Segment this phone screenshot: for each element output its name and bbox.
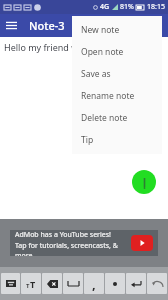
button[interactable]: Delete note <box>72 107 162 129</box>
button[interactable]: Add note <box>132 170 156 194</box>
button[interactable]: Keyboard <box>1 273 20 294</box>
button[interactable]: Period <box>105 273 125 294</box>
button[interactable]: Open note <box>72 41 162 63</box>
staticText: AdMob has a YouTube series! <box>15 230 111 240</box>
button[interactable]: Backspace <box>42 273 62 294</box>
button[interactable]: Enter <box>126 273 146 294</box>
other: YouTube <box>131 235 153 251</box>
button[interactable]: Save as <box>72 63 162 85</box>
staticText: Tip <box>81 134 94 146</box>
staticText: Note-3 <box>29 18 65 33</box>
staticText: 4G <box>100 2 110 12</box>
staticText: T <box>26 282 30 290</box>
button[interactable]: New note <box>72 19 162 41</box>
staticText: Tap for tutorials, screencasts, & more. <box>15 241 131 256</box>
staticText: , <box>92 275 96 293</box>
button[interactable]: Tip <box>72 129 162 151</box>
button[interactable]: Undo <box>147 273 167 294</box>
staticText: Rename note <box>81 90 135 102</box>
button[interactable]: AdMob has a YouTube series! <box>10 230 158 256</box>
button[interactable]: Comma <box>84 273 104 294</box>
button[interactable]: Rename note <box>72 85 162 107</box>
staticText: 81% <box>120 2 134 12</box>
button[interactable]: Text size <box>21 273 41 294</box>
staticText: Delete note <box>81 112 128 124</box>
staticText: Hello my friend what's up <box>4 41 112 53</box>
button[interactable]: Open navigation menu <box>0 14 23 37</box>
staticText: Open note <box>81 46 124 58</box>
staticText: T <box>30 278 36 290</box>
staticText: 18:15 <box>147 2 165 12</box>
button[interactable]: Space <box>63 273 83 294</box>
staticText: New note <box>81 24 120 36</box>
staticText: Save as <box>81 68 111 80</box>
